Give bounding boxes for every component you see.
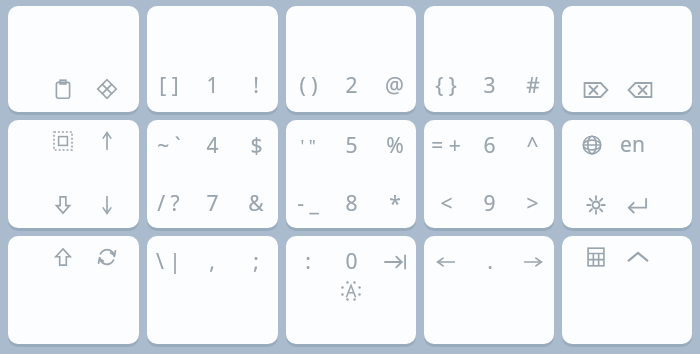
button[interactable]: Page down — [41, 194, 85, 216]
staticText: / ? — [157, 189, 180, 218]
button[interactable]: ( ) — [286, 6, 416, 112]
button[interactable]: Emoji — [85, 78, 129, 100]
staticText: ! — [253, 71, 259, 100]
staticText: : — [305, 247, 311, 276]
staticText: 7 — [206, 189, 219, 218]
staticText: * — [389, 189, 401, 218]
other: Language — [581, 134, 603, 156]
other: Right — [522, 251, 544, 273]
button[interactable]: Select all — [8, 120, 139, 228]
other: Tab — [383, 253, 407, 271]
staticText: ~ ` — [157, 131, 181, 160]
button[interactable]: Brightness — [340, 280, 362, 302]
staticText: < — [440, 189, 453, 218]
button[interactable]: Forward delete — [562, 6, 692, 112]
staticText: en — [620, 130, 645, 159]
staticText: 4 — [206, 131, 219, 160]
staticText: { } — [435, 71, 457, 100]
button[interactable]: en — [608, 130, 650, 159]
button[interactable]: Numpad — [576, 246, 616, 268]
button[interactable]: Language — [576, 134, 608, 156]
button[interactable]: = + — [424, 120, 554, 228]
button[interactable]: : — [286, 236, 416, 344]
button[interactable]: Hide keyboard — [616, 247, 660, 267]
other: Left — [435, 251, 457, 273]
button[interactable]: Clipboard — [41, 78, 85, 100]
button[interactable]: Settings — [576, 194, 616, 216]
staticText: ^ — [526, 131, 539, 160]
other: Select all — [52, 130, 74, 152]
button[interactable]: Select all — [41, 130, 85, 152]
button[interactable]: Forward delete — [574, 80, 618, 100]
staticText: 9 — [483, 189, 496, 218]
staticText: & — [248, 189, 264, 218]
other: Brightness — [340, 280, 362, 302]
button[interactable]: \ | — [147, 236, 278, 344]
button[interactable]: ~ ` — [147, 120, 278, 228]
staticText: 2 — [345, 71, 358, 100]
button[interactable]: Shift — [8, 236, 139, 344]
staticText: \ | — [156, 247, 181, 276]
other: Down — [96, 194, 118, 216]
button[interactable]: Left — [424, 236, 554, 344]
staticText: 5 — [345, 131, 358, 160]
staticText: - _ — [297, 189, 319, 218]
button[interactable]: Up — [85, 130, 129, 152]
other: Hide keyboard — [625, 247, 651, 267]
button[interactable]: Shift — [41, 246, 85, 268]
button[interactable]: { } — [424, 6, 554, 112]
button[interactable]: Enter — [616, 194, 658, 216]
staticText: 1 — [206, 71, 219, 100]
staticText: 0 — [345, 247, 358, 276]
button[interactable]: ' " — [286, 120, 416, 228]
other: Page down — [52, 194, 74, 216]
button[interactable]: [ ] — [147, 6, 278, 112]
staticText: # — [526, 71, 540, 100]
staticText: % — [386, 131, 404, 160]
staticText: 8 — [345, 189, 358, 218]
other: Settings — [585, 194, 607, 216]
button[interactable]: Language — [562, 120, 692, 228]
other: Emoji — [96, 78, 118, 100]
staticText: ' " — [300, 134, 316, 157]
other: Clipboard — [52, 78, 74, 100]
other: Up — [96, 130, 118, 152]
button[interactable]: Rotate — [85, 246, 129, 268]
other: Backspace — [627, 80, 653, 100]
other: Forward delete — [583, 80, 609, 100]
staticText: @ — [385, 71, 404, 100]
other: Enter — [625, 194, 649, 216]
button[interactable]: Numpad — [562, 236, 692, 344]
other: Numpad — [585, 246, 607, 268]
other: Rotate — [96, 246, 118, 268]
button[interactable]: Down — [85, 194, 129, 216]
staticText: 3 — [483, 71, 496, 100]
staticText: > — [526, 189, 539, 218]
staticText: , — [209, 247, 215, 276]
staticText: $ — [250, 131, 263, 160]
other: Shift — [52, 246, 74, 268]
staticText: [ ] — [159, 71, 179, 100]
staticText: ( ) — [299, 71, 318, 100]
button[interactable]: Backspace — [618, 80, 662, 100]
button[interactable]: Clipboard — [8, 6, 139, 112]
staticText: = + — [431, 131, 461, 160]
staticText: 6 — [483, 131, 496, 160]
staticText: ; — [253, 247, 259, 276]
staticText: . — [487, 247, 493, 276]
